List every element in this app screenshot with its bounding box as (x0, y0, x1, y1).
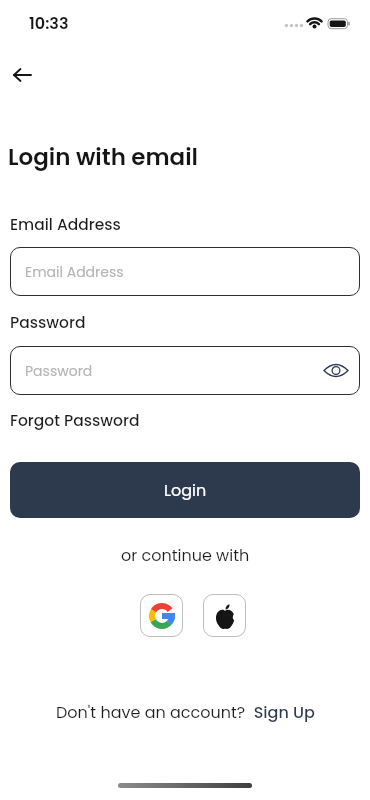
button[interactable]: Password (10, 346, 360, 395)
button[interactable]: Email Address (10, 247, 360, 296)
staticText: Login (164, 479, 207, 501)
staticText: Password (25, 361, 93, 381)
button[interactable] (140, 594, 183, 637)
staticText: Don't have an account? Sign Up (56, 701, 315, 723)
button[interactable] (203, 594, 246, 637)
staticText: 10:33 (29, 12, 69, 34)
button[interactable]: Forgot Password (10, 410, 140, 432)
button[interactable] (6, 59, 38, 91)
staticText: Login with email (8, 141, 198, 173)
staticText: Email Address (10, 214, 121, 236)
button[interactable]: Don't have an account? Sign Up (0, 701, 370, 723)
staticText: Email Address (25, 262, 124, 282)
staticText: Password (10, 312, 86, 334)
button[interactable]: Login (10, 462, 360, 518)
staticText: or continue with (121, 544, 250, 566)
